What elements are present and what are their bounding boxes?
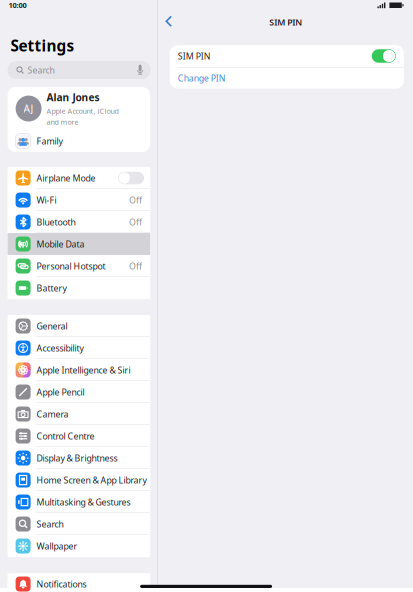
staticText: Apple Account, iCloud: [47, 106, 119, 116]
staticText: Settings: [11, 35, 75, 56]
staticText: AJ: [24, 102, 34, 115]
staticText: Display & Brightness: [37, 452, 118, 464]
staticText: Apple Pencil: [37, 386, 85, 398]
staticText: Family: [37, 135, 63, 147]
staticText: SIM PIN: [269, 16, 302, 28]
staticText: Airplane Mode: [37, 172, 96, 184]
staticText: Notifications: [37, 578, 87, 590]
staticText: Search: [28, 64, 55, 76]
button[interactable]: Control Centre: [8, 425, 150, 447]
staticText: Wallpaper: [37, 540, 78, 552]
button[interactable]: Wallpaper: [8, 535, 150, 557]
staticText: Search: [37, 518, 64, 530]
button[interactable]: Back: [158, 9, 180, 35]
button[interactable]: Display & Brightness: [8, 447, 150, 469]
staticText: SIM PIN: [178, 50, 211, 62]
staticText: General: [37, 320, 68, 332]
staticText: Off: [129, 260, 142, 272]
staticText: Off: [129, 194, 142, 206]
staticText: Home Screen & App Library: [37, 474, 147, 486]
button[interactable]: SIM PIN: [372, 45, 404, 67]
staticText: 10:00: [9, 0, 27, 10]
staticText: Camera: [37, 408, 69, 420]
staticText: Wi-Fi: [37, 194, 57, 206]
button[interactable]: Battery: [8, 277, 150, 299]
staticText: Mobile Data: [37, 238, 85, 250]
button[interactable]: Multitasking & Gestures: [8, 491, 150, 513]
staticText: Bluetooth: [37, 216, 76, 228]
button[interactable]: Wi-Fi: [8, 189, 150, 211]
button[interactable]: Search: [8, 513, 150, 535]
button[interactable]: Accessibility: [8, 337, 150, 359]
button[interactable]: Airplane Mode: [8, 167, 150, 189]
staticText: Change PIN: [178, 72, 226, 84]
button[interactable]: Mobile Data: [8, 233, 150, 255]
staticText: Battery: [37, 282, 67, 294]
staticText: Control Centre: [37, 430, 95, 442]
staticText: Alan Jones: [47, 90, 100, 104]
button[interactable]: Notifications: [8, 573, 150, 592]
button[interactable]: Camera: [8, 403, 150, 425]
button[interactable]: Home Screen & App Library: [8, 469, 150, 491]
button[interactable]: Apple Intelligence & Siri: [8, 359, 150, 381]
button[interactable]: General: [8, 315, 150, 337]
button[interactable]: Apple Pencil: [8, 381, 150, 403]
staticText: Personal Hotspot: [37, 260, 106, 272]
staticText: Apple Intelligence & Siri: [37, 364, 131, 376]
staticText: Off: [129, 216, 142, 228]
button[interactable]: AJ: [8, 87, 150, 130]
staticText: Multitasking & Gestures: [37, 496, 131, 508]
staticText: Accessibility: [37, 342, 84, 354]
button[interactable]: Change PIN: [170, 68, 404, 89]
button[interactable]: Family: [8, 130, 150, 152]
button[interactable]: Bluetooth: [8, 211, 150, 233]
button[interactable]: Personal Hotspot: [8, 255, 150, 277]
staticText: and more: [47, 117, 79, 127]
